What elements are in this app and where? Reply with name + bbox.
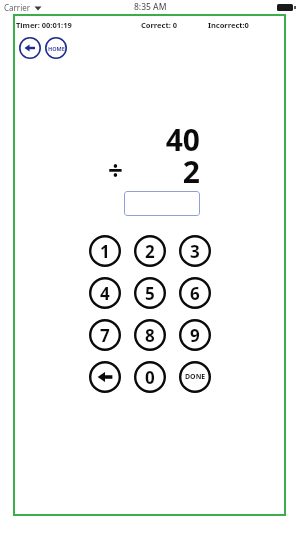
button[interactable]: 0 <box>134 361 166 393</box>
staticText: 8 <box>145 324 155 347</box>
staticText: 6 <box>190 282 200 305</box>
staticText: 3 <box>190 240 200 263</box>
button[interactable]: 9 <box>179 319 211 351</box>
staticText: ÷ <box>108 152 123 187</box>
button[interactable]: 2 <box>134 235 166 267</box>
staticText: DONE <box>185 372 206 382</box>
staticText: 4 <box>100 282 110 305</box>
button[interactable]: Backspace <box>89 361 121 393</box>
staticText: 1 <box>100 240 110 263</box>
button[interactable]: 8 <box>134 319 166 351</box>
staticText: 5 <box>145 282 155 305</box>
staticText: Incorrect:0 <box>208 20 249 30</box>
button[interactable]: DONE <box>179 361 211 393</box>
staticText: 9 <box>190 324 200 347</box>
staticText: 40 <box>120 119 200 160</box>
staticText: 8:35 AM <box>134 1 167 13</box>
staticText: 7 <box>100 324 110 347</box>
staticText: 2 <box>120 151 200 192</box>
staticText: 2 <box>145 240 155 263</box>
button[interactable]: 3 <box>179 235 211 267</box>
button[interactable] <box>124 191 200 216</box>
button[interactable]: HOME <box>45 37 67 59</box>
staticText: Carrier <box>4 2 31 13</box>
button[interactable]: Back <box>19 37 41 59</box>
button[interactable]: 5 <box>134 277 166 309</box>
button[interactable]: 4 <box>89 277 121 309</box>
button[interactable]: 7 <box>89 319 121 351</box>
staticText: HOME <box>48 45 65 52</box>
button[interactable]: 1 <box>89 235 121 267</box>
staticText: Timer: 00:01:19 <box>16 20 72 30</box>
staticText: 0 <box>145 366 155 389</box>
button[interactable]: 6 <box>179 277 211 309</box>
staticText: Correct: 0 <box>141 20 178 30</box>
